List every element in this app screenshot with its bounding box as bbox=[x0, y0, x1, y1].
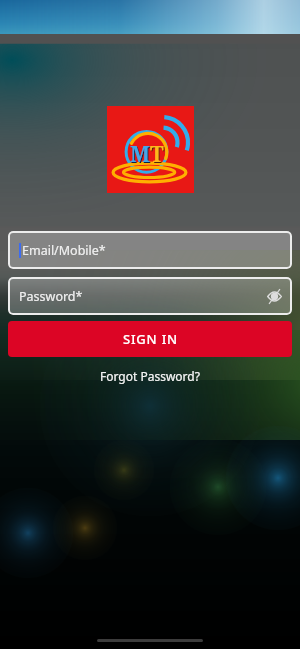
button[interactable]: Password* bbox=[8, 277, 292, 315]
staticText: M bbox=[130, 140, 150, 169]
button[interactable]: Email/Mobile* bbox=[8, 231, 292, 269]
staticText: T bbox=[150, 140, 164, 169]
button[interactable]: Show password bbox=[266, 288, 283, 305]
staticText: SIGN IN bbox=[123, 330, 178, 348]
staticText: T bbox=[151, 141, 165, 170]
staticText: M bbox=[131, 141, 151, 170]
staticText: Email/Mobile* bbox=[22, 242, 106, 259]
button[interactable]: Forgot Password? bbox=[92, 366, 208, 386]
button[interactable]: SIGN IN bbox=[8, 321, 292, 357]
staticText: Forgot Password? bbox=[100, 368, 200, 384]
staticText: Password* bbox=[19, 288, 83, 305]
